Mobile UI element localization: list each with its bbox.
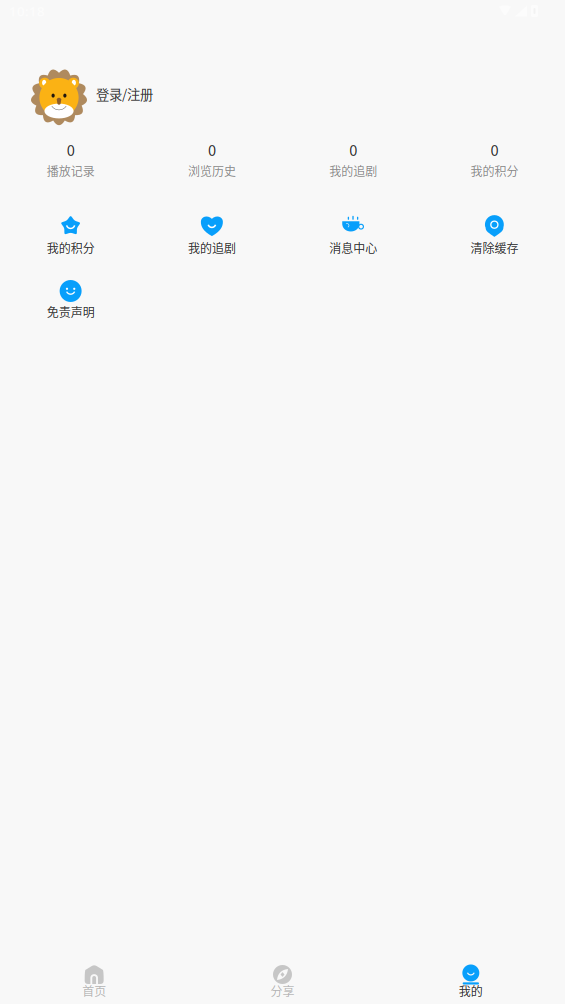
button[interactable]: 0 [282,139,424,173]
staticText: 我的积分 [47,239,95,256]
staticText: 0 [208,139,216,160]
staticText: 分享 [270,982,294,999]
staticText: 0 [490,139,498,160]
button[interactable]: 0 [0,139,141,173]
staticText: 免责声明 [47,303,95,320]
button[interactable]: 免责声明 [0,280,141,320]
button[interactable]: 消息中心 [282,215,424,255]
button[interactable]: 清除缓存 [424,215,565,255]
staticText: 我的追剧 [188,239,236,256]
staticText: 登录/注册 [96,84,153,104]
button[interactable]: 我的追剧 [141,215,282,255]
button[interactable]: 0 [141,139,282,173]
staticText: 首页 [82,982,106,999]
staticText: 播放记录 [47,162,95,179]
button[interactable]: 首页 [0,964,188,998]
button[interactable]: 分享 [188,964,377,998]
staticText: 浏览历史 [188,162,236,179]
button[interactable]: 我的 [377,964,565,998]
button[interactable]: 登录/注册 [0,69,565,125]
staticText: 消息中心 [329,239,377,256]
staticText: 我的追剧 [329,162,377,179]
staticText: 我的积分 [470,162,518,179]
button[interactable]: 0 [424,139,565,173]
staticText: 0 [67,139,75,160]
button[interactable]: 我的积分 [0,215,141,255]
staticText: 我的 [459,982,483,999]
staticText: 0 [349,139,357,160]
staticText: 清除缓存 [470,239,518,256]
